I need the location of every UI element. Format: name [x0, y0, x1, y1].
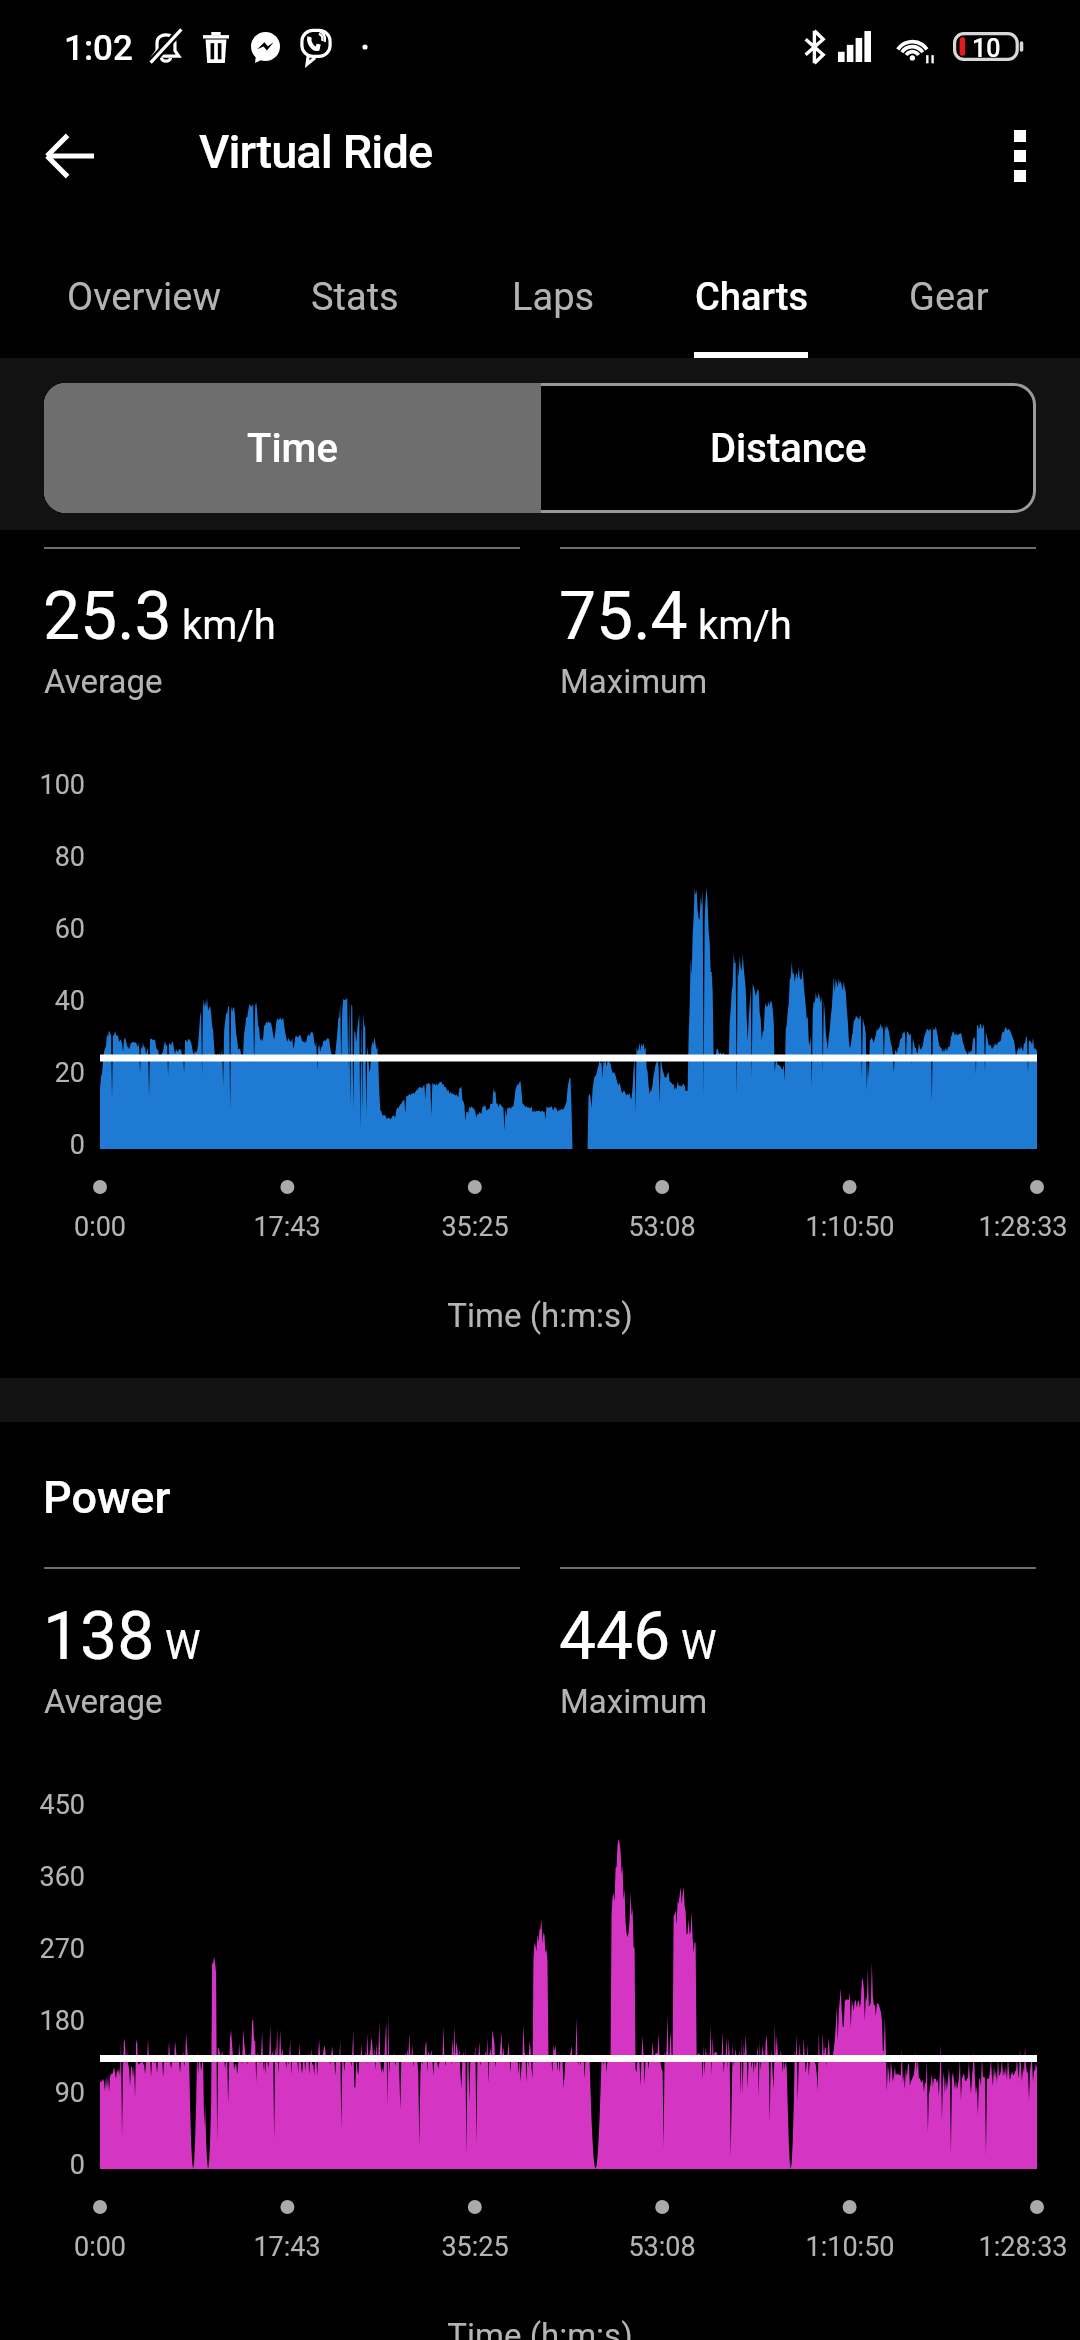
staticText: 450: [0, 1789, 85, 1821]
staticText: Time (h:m:s): [0, 2316, 1080, 2340]
staticText: Virtual Ride: [199, 124, 433, 179]
staticText: Charts: [695, 275, 808, 320]
staticText: 270: [0, 1933, 85, 1965]
staticText: km/h: [182, 602, 276, 649]
staticText: 17:43: [177, 1211, 397, 1243]
staticText: W: [165, 1622, 201, 1669]
staticText: Time (h:m:s): [0, 1296, 1080, 1335]
staticText: 360: [0, 1861, 85, 1893]
staticText: Stats: [311, 275, 399, 320]
staticText: 100: [0, 769, 85, 801]
staticText: 75.4: [559, 578, 688, 655]
staticText: 35:25: [365, 2231, 585, 2263]
staticText: W: [681, 1622, 717, 1669]
staticText: 0:00: [0, 1211, 210, 1243]
staticText: 446: [559, 1598, 671, 1675]
staticText: 17:43: [177, 2231, 397, 2263]
staticText: 53:08: [552, 1211, 772, 1243]
staticText: Laps: [512, 275, 595, 320]
button[interactable]: Laps: [466, 231, 641, 364]
staticText: 10: [972, 34, 1001, 63]
staticText: 20: [0, 1057, 85, 1089]
staticText: Overview: [67, 275, 222, 320]
button[interactable]: More options: [976, 112, 1064, 200]
button[interactable]: Distance: [541, 383, 1036, 513]
staticText: 35:25: [365, 1211, 585, 1243]
staticText: 1:10:50: [740, 2231, 960, 2263]
staticText: Time: [247, 425, 338, 472]
staticText: Distance: [710, 425, 867, 472]
button[interactable]: Stats: [267, 231, 442, 364]
button[interactable]: Time: [44, 383, 541, 513]
staticText: 90: [0, 2077, 85, 2109]
staticText: Average: [44, 1682, 163, 1721]
staticText: 1:02: [64, 28, 133, 69]
staticText: 0: [0, 1129, 85, 1161]
staticText: 80: [0, 841, 85, 873]
staticText: 1:28:33: [913, 2231, 1080, 2263]
staticText: 0:00: [0, 2231, 210, 2263]
staticText: 180: [0, 2005, 85, 2037]
staticText: Maximum: [560, 662, 708, 701]
staticText: 138: [43, 1598, 155, 1675]
staticText: 1:10:50: [740, 1211, 960, 1243]
staticText: km/h: [698, 602, 792, 649]
button[interactable]: Virtual Ride: [199, 107, 619, 195]
staticText: Maximum: [560, 1682, 708, 1721]
button[interactable]: Overview: [49, 231, 239, 364]
staticText: 60: [0, 913, 85, 945]
staticText: 1:28:33: [913, 1211, 1080, 1243]
button[interactable]: Charts: [669, 231, 834, 364]
staticText: 53:08: [552, 2231, 772, 2263]
staticText: 25.3: [43, 578, 172, 655]
staticText: 0: [0, 2149, 85, 2181]
button[interactable]: Gear: [866, 231, 1031, 364]
button[interactable]: Back: [26, 112, 114, 200]
staticText: Gear: [909, 275, 989, 320]
staticText: 40: [0, 985, 85, 1017]
staticText: Average: [44, 662, 163, 701]
staticText: Power: [43, 1471, 171, 1524]
